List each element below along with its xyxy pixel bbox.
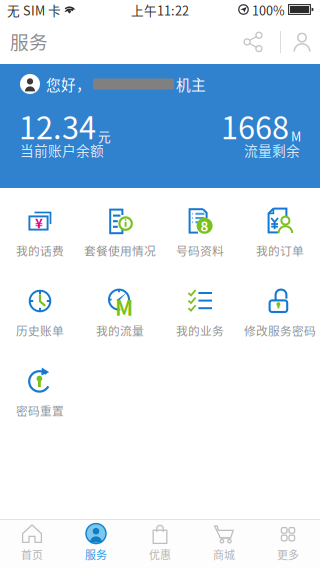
staticText: 1668 — [221, 104, 289, 148]
button[interactable]: 套餐使用情况 — [80, 207, 160, 267]
staticText: 号码资料 — [176, 242, 224, 259]
button[interactable]: 更多 — [256, 519, 320, 568]
button[interactable]: 我的业务 — [160, 287, 240, 347]
staticText: 套餐使用情况 — [84, 242, 156, 259]
staticText: 我的话费 — [16, 242, 64, 259]
button[interactable]: 8 — [160, 207, 240, 267]
button[interactable]: 我的订单 — [240, 207, 320, 267]
button[interactable]: 账户 — [0, 20, 34, 54]
button[interactable]: 商城 — [192, 519, 256, 568]
staticText: 历史账单 — [16, 322, 64, 339]
staticText: M — [115, 291, 133, 322]
staticText: 我的订单 — [256, 242, 304, 259]
staticText: 您好， — [46, 73, 91, 95]
staticText: 服务 — [85, 547, 107, 562]
staticText: 密码重置 — [16, 402, 64, 419]
staticText: 更多 — [277, 547, 299, 562]
button[interactable]: 服务 — [64, 519, 128, 568]
staticText: M — [291, 127, 301, 145]
staticText: 元 — [98, 127, 111, 145]
staticText: 流量剩余 — [244, 140, 300, 160]
staticText: 我的业务 — [176, 322, 224, 339]
staticText: 当前账户余额 — [20, 140, 104, 160]
staticText: 首页 — [21, 547, 43, 562]
button[interactable]: 优惠 — [128, 519, 192, 568]
staticText: 8 — [201, 216, 209, 235]
staticText: 机主 — [176, 73, 206, 95]
staticText: 无 SIM 卡 — [7, 1, 61, 19]
staticText: 12.34 — [19, 104, 96, 148]
staticText: 服务 — [10, 27, 48, 54]
staticText: 100% — [252, 1, 285, 19]
staticText: 上午11:22 — [131, 1, 189, 19]
button[interactable]: 历史账单 — [0, 287, 80, 347]
staticText: 我的流量 — [96, 322, 144, 339]
button[interactable]: 修改服务密码 — [240, 287, 320, 347]
staticText: 优惠 — [149, 547, 171, 562]
button[interactable]: ¥ — [0, 207, 80, 267]
staticText: 商城 — [213, 547, 235, 562]
button[interactable]: 密码重置 — [0, 367, 80, 427]
staticText: ¥ — [35, 213, 43, 232]
button[interactable]: 首页 — [0, 519, 64, 568]
button[interactable]: 分享 — [0, 20, 34, 54]
staticText: 修改服务密码 — [244, 322, 316, 339]
button[interactable]: M — [80, 287, 160, 347]
